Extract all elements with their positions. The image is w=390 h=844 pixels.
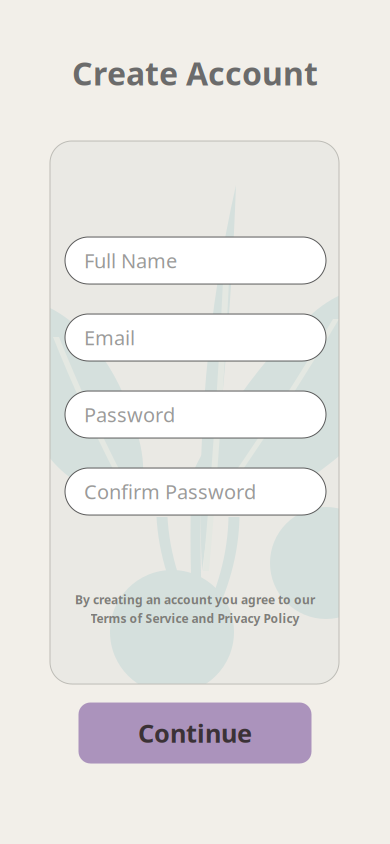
button[interactable]: Confirm Password bbox=[65, 468, 326, 515]
staticText: Confirm Password bbox=[84, 478, 256, 505]
staticText: Continue bbox=[138, 716, 252, 750]
button[interactable]: Email bbox=[65, 314, 326, 361]
staticText: Email bbox=[84, 324, 135, 351]
staticText: Full Name bbox=[84, 247, 177, 274]
staticText: Password bbox=[84, 401, 175, 428]
button[interactable]: Continue bbox=[78, 702, 311, 763]
button[interactable]: Password bbox=[65, 391, 326, 438]
staticText: Terms of Service and Privacy Policy bbox=[90, 610, 299, 626]
staticText: Create Account bbox=[72, 52, 318, 94]
button[interactable]: Full Name bbox=[65, 237, 326, 284]
staticText: By creating an account you agree to our bbox=[75, 592, 315, 607]
